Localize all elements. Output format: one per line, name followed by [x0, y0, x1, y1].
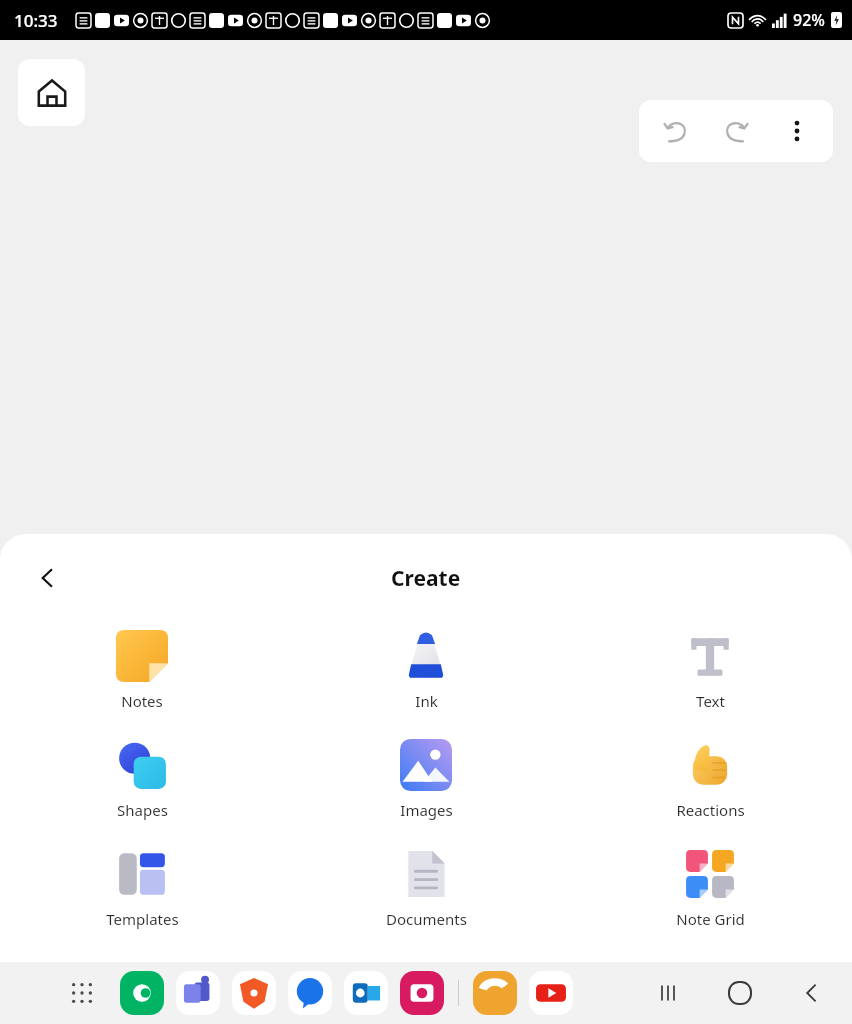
- button[interactable]: Ink: [284, 622, 568, 731]
- staticText: Ink: [415, 691, 438, 711]
- button[interactable]: Text: [568, 622, 852, 731]
- button[interactable]: Teams: [176, 971, 220, 1015]
- button[interactable]: YouTube: [529, 971, 573, 1015]
- button[interactable]: Documents: [284, 840, 568, 949]
- staticText: Create: [391, 564, 461, 593]
- button[interactable]: Audible: [473, 971, 517, 1015]
- staticText: Templates: [106, 909, 179, 929]
- staticText: Notes: [121, 691, 163, 711]
- button[interactable]: Home: [18, 59, 85, 126]
- button[interactable]: Undo: [652, 107, 700, 155]
- button[interactable]: Outlook: [344, 971, 388, 1015]
- staticText: Text: [696, 691, 725, 711]
- button[interactable]: Messenger: [288, 971, 332, 1015]
- button[interactable]: Notes: [0, 622, 284, 731]
- staticText: 10:33: [14, 9, 58, 32]
- button[interactable]: Templates: [0, 840, 284, 949]
- button[interactable]: Note Grid: [568, 840, 852, 949]
- button[interactable]: Home: [716, 969, 764, 1017]
- staticText: Images: [400, 800, 453, 820]
- button[interactable]: Images: [284, 731, 568, 840]
- button[interactable]: More options: [773, 107, 821, 155]
- staticText: Reactions: [676, 800, 745, 820]
- button[interactable]: Reactions: [568, 731, 852, 840]
- staticText: 92%: [793, 9, 825, 31]
- button[interactable]: Redo: [712, 107, 760, 155]
- button[interactable]: Recents: [644, 969, 692, 1017]
- button[interactable]: All apps: [60, 971, 104, 1015]
- button[interactable]: Instagram: [400, 971, 444, 1015]
- button[interactable]: Back: [24, 554, 72, 602]
- button[interactable]: Brave: [232, 971, 276, 1015]
- button[interactable]: Shapes: [0, 731, 284, 840]
- staticText: Documents: [386, 909, 467, 929]
- staticText: Shapes: [117, 800, 168, 820]
- button[interactable]: Back: [788, 969, 836, 1017]
- button[interactable]: Messages: [120, 971, 164, 1015]
- staticText: Note Grid: [676, 909, 745, 929]
